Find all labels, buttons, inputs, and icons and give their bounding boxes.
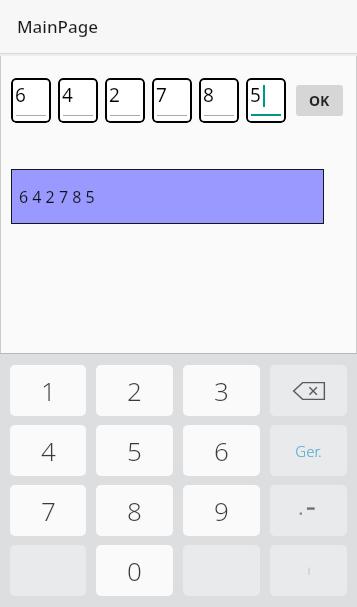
button[interactable]: 6 [183,425,260,476]
staticText: 8 [127,493,142,528]
button[interactable]: 7 [10,485,86,536]
button[interactable]: 5 [96,425,173,476]
button[interactable]: 8 [96,485,173,536]
button[interactable]: 1 [10,365,86,416]
staticText: 6 [15,82,26,108]
button[interactable]: Backspace [270,365,347,416]
staticText: OK [309,91,330,110]
staticText: 7 [156,82,167,108]
staticText: Ger. [295,441,322,461]
staticText: 2 [127,373,142,408]
staticText: 4 [41,433,56,468]
button[interactable]: 6 [11,78,51,123]
staticText: 1 [41,373,56,408]
staticText: 5 [250,82,261,108]
button[interactable]: 2 [96,365,173,416]
staticText: 0 [127,553,142,588]
staticText: 7 [41,493,56,528]
button[interactable]: 6 4 2 7 8 5 [11,169,324,224]
button[interactable]: OK [296,85,343,116]
button[interactable]: 5 [246,78,286,123]
button[interactable]: 9 [183,485,260,536]
button[interactable]: Period and dash [270,485,347,536]
staticText: 2 [109,82,120,108]
button[interactable]: 7 [152,78,192,123]
button[interactable]: 4 [10,425,86,476]
staticText: 6 4 2 7 8 5 [19,186,95,208]
button[interactable]: 3 [183,365,260,416]
staticText: 8 [203,82,214,108]
staticText: 9 [214,493,229,528]
button[interactable]: 8 [199,78,239,123]
button[interactable]: Ger. [270,425,347,476]
staticText: 6 [214,433,229,468]
button[interactable]: 4 [58,78,98,123]
staticText: MainPage [17,15,98,38]
button[interactable]: 2 [105,78,145,123]
staticText: 5 [127,433,142,468]
staticText: 3 [214,373,229,408]
button[interactable]: 0 [96,545,173,596]
staticText: 4 [62,82,73,108]
